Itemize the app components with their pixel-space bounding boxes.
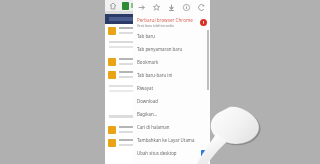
button[interactable]: Perbarui browser Chrome bbox=[133, 16, 210, 29]
staticText: Tambahkan ke Layar Utama bbox=[137, 137, 195, 143]
button[interactable] bbox=[105, 136, 210, 149]
button[interactable] bbox=[105, 55, 210, 68]
button[interactable]: Cari di halaman bbox=[133, 120, 210, 133]
button[interactable]: Bookmark bbox=[133, 55, 210, 68]
button[interactable] bbox=[105, 123, 210, 136]
button[interactable] bbox=[105, 68, 210, 81]
button[interactable]: Riwayat bbox=[133, 81, 210, 94]
staticText: Cari di halaman bbox=[137, 124, 170, 130]
button[interactable]: Page info bbox=[181, 2, 192, 13]
button[interactable]: Home bbox=[108, 1, 117, 10]
button[interactable]: Tab baru-baru ini bbox=[133, 68, 210, 81]
staticText: Versi baru telah tersedia bbox=[137, 24, 174, 28]
staticText: Riwayat bbox=[137, 85, 154, 91]
button[interactable]: Tab penyamaran baru bbox=[133, 42, 210, 55]
button[interactable]: Bagikan... bbox=[133, 107, 210, 120]
staticText: Tab penyamaran baru bbox=[137, 46, 183, 52]
button[interactable]: Download bbox=[133, 94, 210, 107]
staticText: Tab baru-baru ini bbox=[137, 72, 173, 78]
staticText: Tab baru bbox=[137, 33, 156, 39]
button[interactable]: Ubah situs desktop bbox=[133, 146, 210, 159]
staticText: Bookmark bbox=[137, 59, 159, 65]
button[interactable]: Bookmark bbox=[151, 2, 162, 13]
staticText: ! bbox=[203, 20, 205, 25]
button[interactable] bbox=[105, 24, 210, 37]
staticText: Download bbox=[137, 98, 158, 104]
button[interactable]: Tambahkan ke Layar Utama bbox=[133, 133, 210, 146]
button[interactable]: Forward bbox=[136, 2, 147, 13]
staticText: Ubah situs desktop bbox=[137, 150, 201, 156]
button[interactable]: Download bbox=[166, 2, 177, 13]
staticText: Perbarui browser Chrome bbox=[137, 17, 193, 23]
button[interactable]: Tab baru bbox=[133, 29, 210, 42]
staticText: Bagikan... bbox=[137, 111, 158, 117]
button[interactable]: Site security bbox=[122, 2, 129, 10]
button[interactable]: Reload bbox=[196, 2, 207, 13]
